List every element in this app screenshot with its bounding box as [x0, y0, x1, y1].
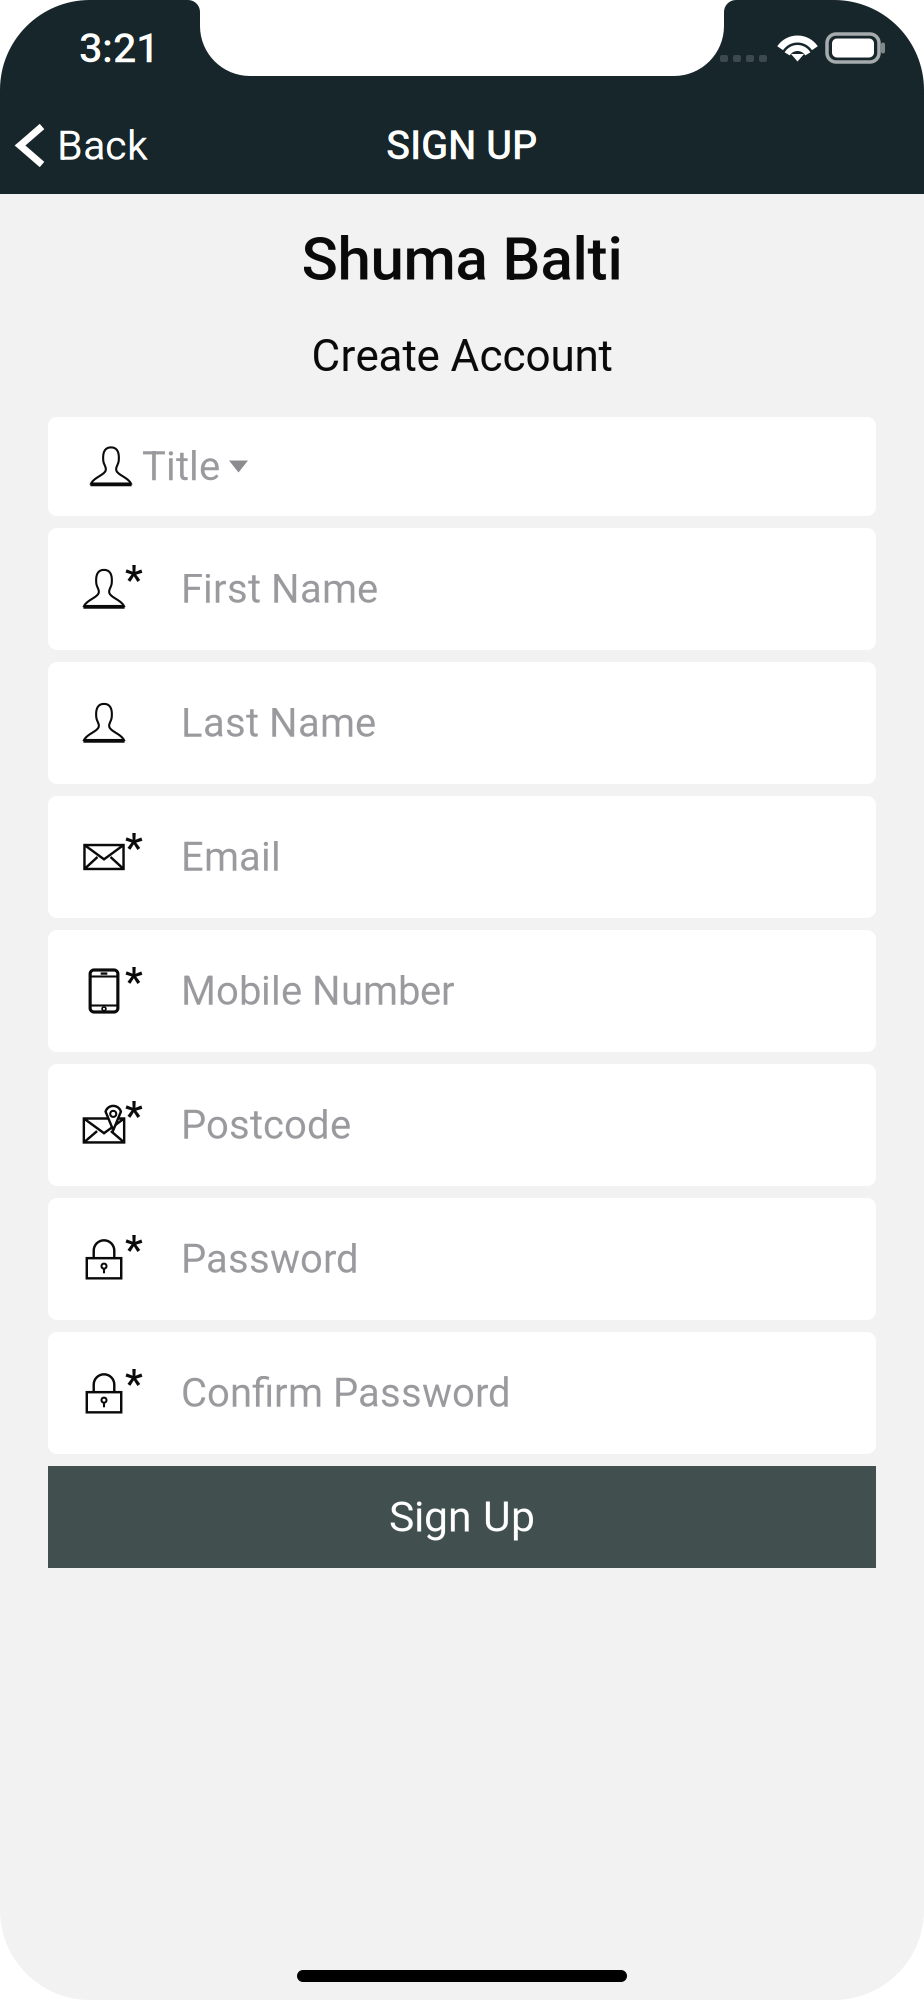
button[interactable]: *: [48, 1332, 876, 1454]
staticText: Shuma Balti: [301, 224, 622, 294]
staticText: Mobile Number: [181, 968, 455, 1014]
staticText: Create Account: [311, 330, 612, 382]
button[interactable]: Sign Up: [48, 1466, 876, 1568]
staticText: Confirm Password: [181, 1370, 511, 1416]
button[interactable]: Title: [48, 417, 876, 516]
staticText: Title: [142, 443, 220, 490]
button[interactable]: *: [48, 1198, 876, 1320]
staticText: 3:21: [79, 24, 159, 72]
button[interactable]: *: [48, 528, 876, 650]
button[interactable]: Last Name: [48, 662, 876, 784]
staticText: *: [125, 1227, 143, 1273]
staticText: *: [125, 1361, 143, 1407]
staticText: *: [125, 959, 143, 1005]
staticText: SIGN UP: [386, 122, 538, 169]
staticText: First Name: [181, 566, 378, 612]
button[interactable]: *: [48, 796, 876, 918]
staticText: *: [125, 825, 143, 871]
staticText: Postcode: [181, 1102, 351, 1148]
button[interactable]: *: [48, 930, 876, 1052]
staticText: Sign Up: [389, 1492, 535, 1542]
staticText: Back: [57, 121, 148, 170]
button[interactable]: *: [48, 1064, 876, 1186]
staticText: Password: [181, 1236, 359, 1282]
staticText: Last Name: [181, 700, 376, 746]
staticText: *: [125, 557, 143, 603]
button[interactable]: Back: [0, 96, 166, 195]
staticText: Email: [181, 834, 281, 880]
staticText: *: [125, 1093, 143, 1139]
